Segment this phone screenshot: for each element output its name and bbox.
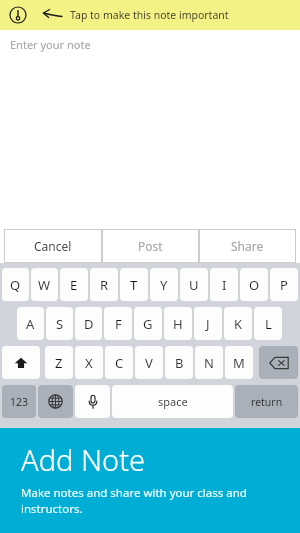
staticText: C <box>115 354 124 372</box>
staticText: R <box>100 276 109 294</box>
staticText: D <box>84 315 94 333</box>
button[interactable]: Mark important <box>0 0 300 30</box>
button[interactable]: D <box>75 307 102 340</box>
button[interactable]: Voice input <box>75 385 110 418</box>
button[interactable]: T <box>120 268 148 301</box>
button[interactable]: Shift <box>2 346 40 379</box>
button[interactable]: W <box>31 268 58 301</box>
staticText: Cancel <box>34 238 72 254</box>
staticText: V <box>145 354 153 372</box>
button[interactable]: U <box>180 268 208 301</box>
button[interactable]: I <box>210 268 238 301</box>
button[interactable]: V <box>135 346 163 379</box>
staticText: Y <box>160 276 168 294</box>
button[interactable]: G <box>134 307 162 340</box>
staticText: O <box>249 276 260 294</box>
button[interactable]: M <box>225 346 253 379</box>
staticText: 123 <box>10 395 29 409</box>
staticText: F <box>115 315 122 333</box>
button[interactable]: H <box>164 307 192 340</box>
staticText: Make notes and share with your class and… <box>21 485 286 516</box>
button[interactable]: Backspace <box>259 346 298 379</box>
button[interactable]: Post <box>102 229 199 263</box>
staticText: return <box>251 395 283 409</box>
staticText: P <box>280 276 288 294</box>
staticText: S <box>56 315 64 333</box>
button[interactable]: Share <box>199 229 296 263</box>
button[interactable]: E <box>60 268 88 301</box>
button[interactable]: O <box>240 268 268 301</box>
button[interactable]: space <box>112 385 233 418</box>
button[interactable]: P <box>270 268 298 301</box>
staticText: Tap to make this note important <box>70 8 229 22</box>
staticText: X <box>85 354 93 372</box>
staticText: K <box>234 315 243 333</box>
button[interactable]: Q <box>2 268 29 301</box>
staticText: Post <box>138 238 163 254</box>
staticText: M <box>233 354 245 372</box>
button[interactable]: Z <box>45 346 73 379</box>
button[interactable]: 123 <box>2 385 36 418</box>
button[interactable]: B <box>165 346 193 379</box>
button[interactable]: K <box>224 307 252 340</box>
staticText: Q <box>10 276 21 294</box>
staticText: B <box>175 354 184 372</box>
button[interactable]: X <box>75 346 103 379</box>
button[interactable]: L <box>254 307 282 340</box>
staticText: H <box>173 315 183 333</box>
button[interactable]: Cancel <box>4 229 102 263</box>
button[interactable]: J <box>194 307 222 340</box>
button[interactable]: A <box>17 307 44 340</box>
button[interactable]: return <box>235 385 298 418</box>
staticText: Z <box>55 354 63 372</box>
staticText: Enter your note <box>10 37 91 52</box>
staticText: Share <box>231 238 264 254</box>
button[interactable]: Change keyboard language <box>38 385 73 418</box>
button[interactable]: C <box>105 346 133 379</box>
button[interactable]: Mark important <box>8 5 28 25</box>
staticText: T <box>130 276 138 294</box>
staticText: W <box>38 276 51 294</box>
staticText: E <box>70 276 78 294</box>
staticText: space <box>158 394 188 409</box>
button[interactable]: Enter your note <box>0 30 300 58</box>
button[interactable]: R <box>90 268 118 301</box>
staticText: N <box>204 354 214 372</box>
staticText: A <box>26 315 35 333</box>
button[interactable]: F <box>104 307 132 340</box>
staticText: I <box>222 276 227 294</box>
button[interactable]: Y <box>150 268 178 301</box>
staticText: U <box>189 276 199 294</box>
staticText: J <box>206 315 210 333</box>
button[interactable]: N <box>195 346 223 379</box>
staticText: Add Note <box>21 440 146 479</box>
staticText: G <box>143 315 153 333</box>
staticText: L <box>265 315 272 333</box>
button[interactable]: S <box>46 307 73 340</box>
